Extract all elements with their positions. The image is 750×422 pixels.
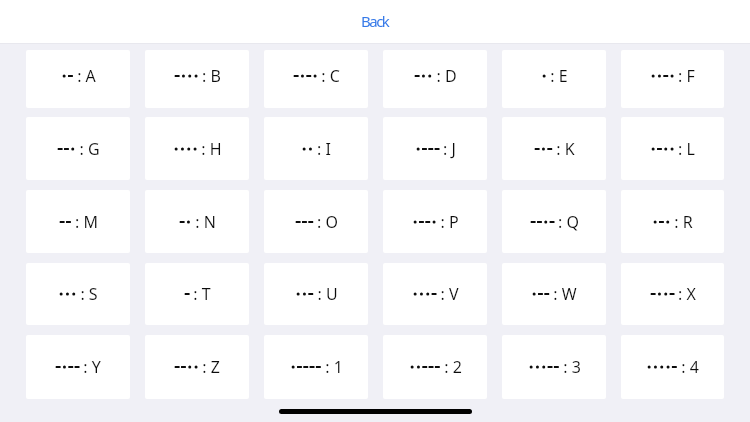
staticText: : B [202, 65, 221, 87]
button[interactable]: dash dash dash : O [264, 190, 368, 253]
button[interactable]: dot dot dot : S [26, 263, 130, 325]
button[interactable]: dot dash : A [26, 50, 130, 108]
staticText: : F [678, 65, 695, 87]
button[interactable]: dot dot dot dash : V [383, 263, 487, 325]
button[interactable]: dash dot dash dot : C [264, 50, 368, 108]
staticText: : V [440, 283, 459, 305]
button[interactable]: dot : E [502, 50, 606, 108]
staticText: : G [79, 138, 100, 160]
staticText: : M [75, 211, 98, 233]
staticText: : J [443, 138, 456, 160]
staticText: : K [556, 138, 575, 160]
staticText: : H [201, 138, 222, 160]
button[interactable]: dash dot : N [145, 190, 249, 253]
staticText: : E [550, 65, 568, 87]
button[interactable]: dot dot dash dash dash : 2 [383, 335, 487, 399]
staticText: : W [553, 283, 577, 305]
button[interactable]: dot dot dot dot dash : 4 [621, 335, 724, 399]
button[interactable]: dash : T [145, 263, 249, 325]
button[interactable]: dash dash dot dot : Z [145, 335, 249, 399]
staticText: : X [678, 283, 696, 305]
staticText: : L [678, 138, 695, 160]
staticText: : 3 [563, 356, 581, 378]
staticText: : P [440, 211, 459, 233]
button[interactable]: dot dot dash : U [264, 263, 368, 325]
button[interactable]: dot dot : I [264, 117, 368, 180]
staticText: : 4 [681, 356, 699, 378]
staticText: Back [361, 11, 389, 31]
button[interactable]: dash dash dot dash : Q [502, 190, 606, 253]
staticText: : Z [202, 356, 220, 378]
staticText: : D [436, 65, 457, 87]
button[interactable]: dot dot dash dot : F [621, 50, 724, 108]
staticText: : S [80, 283, 98, 305]
button[interactable]: dash dot dash : K [502, 117, 606, 180]
button[interactable]: dash dot dot : D [383, 50, 487, 108]
button[interactable]: dot dash dash dash dash : 1 [264, 335, 368, 399]
button[interactable]: dot dash dot dot : L [621, 117, 724, 180]
button[interactable]: dot dash dash dash : J [383, 117, 487, 180]
staticText: : A [77, 65, 96, 87]
staticText: : 2 [444, 356, 462, 378]
button[interactable]: Back [349, 8, 401, 34]
staticText: : N [195, 211, 216, 233]
button[interactable]: dash dot dot dash : X [621, 263, 724, 325]
staticText: : Y [83, 356, 101, 378]
button[interactable]: dot dash dash : W [502, 263, 606, 325]
staticText: : Q [558, 211, 579, 233]
staticText: : O [317, 211, 338, 233]
button[interactable]: dot dash dash dot : P [383, 190, 487, 253]
staticText: : C [321, 65, 340, 87]
staticText: : I [317, 138, 331, 160]
button[interactable]: dot dash dot : R [621, 190, 724, 253]
button[interactable]: dot dot dot dot : H [145, 117, 249, 180]
staticText: : U [317, 283, 338, 305]
staticText: : R [674, 211, 693, 233]
button[interactable]: dash dash : M [26, 190, 130, 253]
other: Home indicator [279, 409, 472, 414]
button[interactable]: dash dash dot : G [26, 117, 130, 180]
button[interactable]: dash dot dash dash : Y [26, 335, 130, 399]
button[interactable]: dash dot dot dot : B [145, 50, 249, 108]
button[interactable]: dot dot dot dash dash : 3 [502, 335, 606, 399]
staticText: : 1 [325, 356, 343, 378]
staticText: : T [193, 283, 211, 305]
